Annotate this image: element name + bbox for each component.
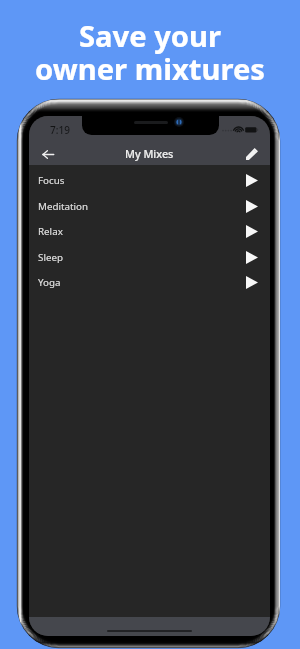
staticText: Focus (38, 174, 65, 187)
button[interactable]: Edit (240, 142, 264, 166)
staticText: Sleep (38, 251, 63, 264)
staticText: Yoga (38, 276, 61, 289)
staticText: Save your owner mixtures (35, 16, 265, 89)
staticText: My Mixes (125, 146, 174, 161)
staticText: 7:19 (50, 123, 70, 137)
button[interactable]: Sleep (29, 244, 270, 270)
button[interactable]: Back (36, 142, 60, 166)
staticText: Relax (38, 225, 63, 238)
staticText: Meditation (38, 200, 89, 213)
button[interactable]: Focus (29, 167, 270, 193)
button[interactable]: Relax (29, 218, 270, 244)
button[interactable]: Yoga (29, 269, 270, 295)
button[interactable]: Meditation (29, 193, 270, 219)
